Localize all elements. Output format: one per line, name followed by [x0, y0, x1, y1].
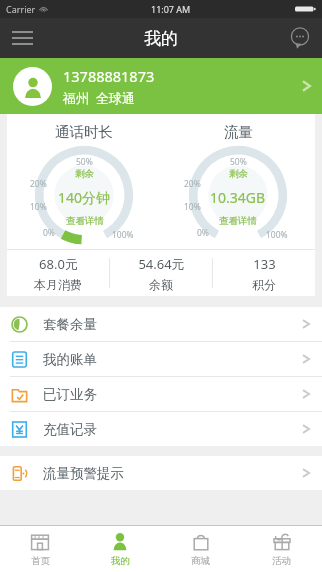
staticText: 我的账单 — [43, 351, 301, 368]
button[interactable]: 充值记录 — [0, 412, 322, 446]
staticText: 我的 — [144, 28, 178, 49]
staticText: 积分 — [252, 277, 276, 292]
staticText: 0% — [43, 227, 55, 239]
staticText: 10% — [184, 201, 201, 213]
staticText: 100% — [112, 229, 134, 241]
button[interactable]: 54.64元 — [110, 255, 212, 292]
button[interactable]: 我的 — [80, 526, 160, 572]
staticText: 0% — [197, 227, 209, 239]
button[interactable]: 流量 — [161, 123, 315, 246]
button[interactable]: 133 — [213, 255, 315, 292]
staticText: 20% — [30, 178, 47, 190]
staticText: 11:07 AM — [151, 3, 191, 15]
button[interactable]: 13788881873 — [0, 58, 322, 114]
staticText: 140分钟 — [58, 188, 111, 207]
staticText: 本月消费 — [34, 277, 82, 292]
button[interactable]: 通话时长 — [7, 123, 161, 246]
staticText: 10.34GB — [210, 188, 266, 207]
staticText: 商城 — [191, 555, 210, 567]
staticText: 54.64元 — [138, 255, 185, 273]
staticText: 充值记录 — [43, 421, 301, 438]
staticText: Carrier — [6, 3, 36, 15]
staticText: 剩余 — [75, 168, 94, 180]
staticText: 套餐余量 — [43, 316, 301, 333]
staticText: 活动 — [272, 555, 291, 567]
staticText: 已订业务 — [43, 386, 301, 403]
staticText: 133 — [253, 255, 276, 273]
staticText: 100% — [266, 229, 288, 241]
button[interactable]: 首页 — [0, 526, 80, 572]
staticText: 13788881873 — [63, 66, 155, 86]
button[interactable]: Messages — [278, 18, 322, 58]
button[interactable]: 套餐余量 — [0, 307, 322, 342]
staticText: 首页 — [31, 555, 50, 567]
staticText: 50% — [76, 156, 93, 168]
button[interactable]: 流量预警提示 — [0, 456, 322, 490]
button[interactable]: Menu — [0, 18, 44, 58]
button[interactable]: 商城 — [160, 526, 241, 572]
staticText: 查看详情 — [66, 215, 104, 227]
button[interactable]: 68.0元 — [7, 255, 109, 292]
staticText: 我的 — [111, 555, 130, 567]
staticText: 10% — [30, 201, 47, 213]
button[interactable]: 我的账单 — [0, 342, 322, 377]
staticText: 68.0元 — [39, 255, 78, 273]
staticText: 余额 — [149, 277, 173, 292]
staticText: 通话时长 — [55, 123, 113, 141]
staticText: 流量 — [224, 123, 253, 141]
staticText: 50% — [230, 156, 247, 168]
staticText: 20% — [184, 178, 201, 190]
button[interactable]: 已订业务 — [0, 377, 322, 412]
staticText: 福州 全球通 — [63, 89, 135, 107]
staticText: 流量预警提示 — [43, 465, 301, 482]
button[interactable]: 活动 — [241, 526, 322, 572]
staticText: 查看详情 — [219, 215, 257, 227]
staticText: 剩余 — [229, 168, 248, 180]
